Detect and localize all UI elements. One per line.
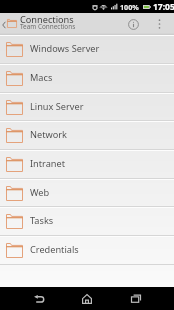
staticText: Linux Server <box>30 100 84 113</box>
button[interactable]: Recent apps <box>121 287 150 310</box>
button[interactable]: Macs <box>0 64 174 93</box>
button[interactable]: Network <box>0 121 174 150</box>
staticText: 17:05 <box>153 1 174 13</box>
button[interactable]: Up <box>0 20 17 29</box>
button[interactable]: Home <box>72 287 101 310</box>
staticText: Team Connections <box>20 22 76 31</box>
button[interactable]: Info <box>122 13 144 35</box>
staticText: Network <box>30 128 67 141</box>
staticText: Tasks <box>30 214 54 227</box>
staticText: Windows Server <box>30 42 100 55</box>
button[interactable]: Back <box>24 287 53 310</box>
staticText: Credentials <box>30 243 79 256</box>
button[interactable]: More options <box>151 13 167 35</box>
staticText: Web <box>30 186 50 199</box>
button[interactable]: Windows Server <box>0 35 174 64</box>
button[interactable]: Credentials <box>0 236 174 265</box>
button[interactable]: Web <box>0 179 174 207</box>
button[interactable]: Linux Server <box>0 93 174 121</box>
staticText: Intranet <box>30 157 66 170</box>
button[interactable]: Tasks <box>0 207 174 236</box>
staticText: 100% <box>120 2 139 12</box>
staticText: Connections <box>20 13 74 26</box>
button[interactable]: Intranet <box>0 150 174 179</box>
staticText: Macs <box>30 71 53 84</box>
